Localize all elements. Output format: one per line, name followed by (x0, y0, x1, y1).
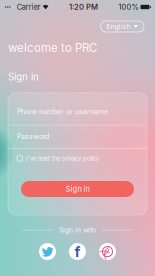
button[interactable]: Sign in with Facebook (69, 243, 86, 260)
staticText: English (107, 22, 131, 31)
staticText: 100% (118, 2, 138, 11)
button[interactable]: I've read the privacy policy (8, 154, 147, 163)
button[interactable]: English (101, 21, 144, 32)
staticText: Sign in with (59, 226, 96, 234)
staticText: Sign in (65, 184, 89, 193)
staticText: f (74, 243, 80, 260)
staticText: 1:20 PM (69, 2, 98, 12)
staticText: Password (17, 132, 49, 141)
button[interactable]: Sign in with Dribbble (99, 243, 116, 260)
button[interactable]: Sign in with Twitter (39, 243, 56, 260)
staticText: I've read the privacy policy (26, 155, 99, 162)
staticText: Phone number or username (17, 108, 108, 116)
staticText: Carrier (15, 2, 41, 11)
staticText: Sign in (8, 71, 39, 83)
button[interactable]: Sign in (21, 181, 134, 197)
staticText: welcome to PRC (8, 41, 97, 55)
